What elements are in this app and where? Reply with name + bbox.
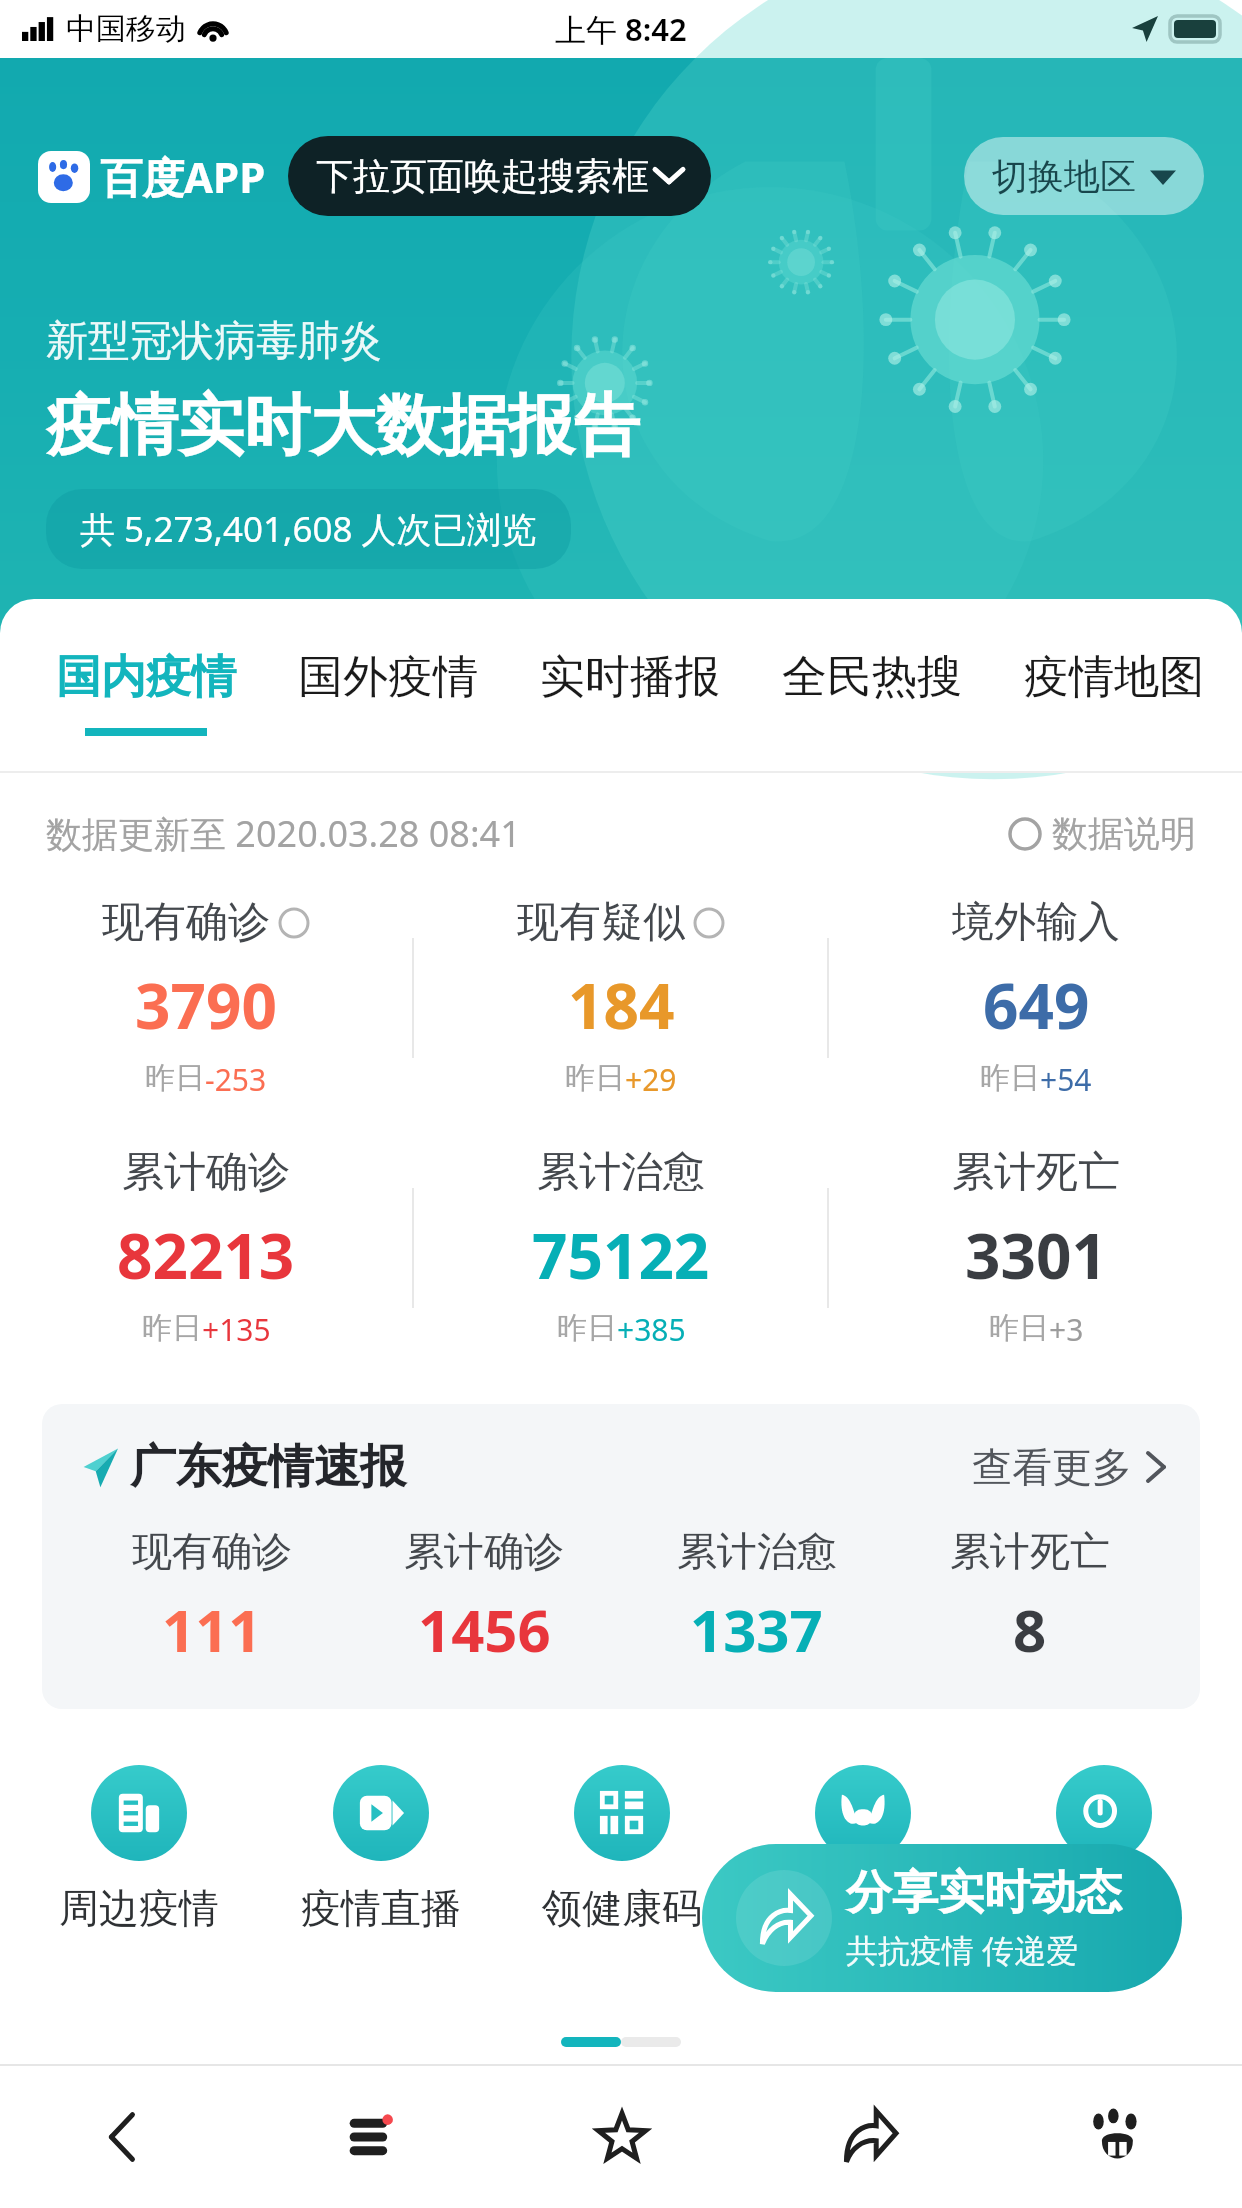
staticText: 疫情直播	[301, 1883, 461, 1933]
button[interactable]: 疫情地图	[1024, 649, 1204, 736]
button[interactable]: 百度APP	[38, 148, 266, 205]
staticText: 国外疫情	[298, 649, 478, 706]
staticText: 现有确诊	[102, 896, 270, 949]
staticText: 3301	[965, 1213, 1107, 1297]
staticText: 累计确诊	[122, 1146, 290, 1199]
staticText: 现有确诊	[132, 1526, 292, 1576]
staticText: 境外输入	[952, 896, 1120, 949]
staticText: 82213	[117, 1213, 295, 1297]
staticText: 中国移动	[66, 10, 186, 48]
staticText: 现有疑似	[517, 896, 685, 949]
button[interactable]: 查看更多	[972, 1442, 1166, 1492]
staticText: 百度APP	[100, 148, 266, 205]
staticText: 实时播报	[540, 649, 720, 706]
staticText: 累计治愈	[537, 1146, 705, 1199]
staticText: 国内疫情	[56, 649, 236, 706]
staticText: +54	[1040, 1059, 1092, 1100]
button[interactable]: Favorite	[498, 2066, 746, 2208]
staticText: 昨日	[145, 1059, 205, 1097]
staticText: 昨日	[980, 1059, 1040, 1097]
staticText: 共 5,273,401,608 人次已浏览	[80, 505, 537, 553]
staticText: 昨日	[142, 1309, 202, 1347]
staticText: 184	[568, 963, 675, 1047]
button[interactable]: 领健康码	[501, 1765, 742, 1933]
staticText: 疫情地图	[1024, 649, 1204, 706]
button[interactable]: 周边疫情	[18, 1765, 260, 1933]
button[interactable]: 国内疫情	[56, 649, 236, 736]
staticText: -253	[205, 1059, 267, 1100]
staticText: +135	[202, 1309, 271, 1350]
staticText: 新型冠状病毒肺炎	[46, 315, 382, 368]
button[interactable]: Menu	[249, 2066, 498, 2208]
staticText: 分享实时动态	[846, 1864, 1122, 1922]
button[interactable]: Baidu	[994, 2066, 1242, 2208]
button[interactable]: 切换地区	[964, 137, 1204, 215]
button[interactable]: 下拉页面唤起搜索框	[288, 136, 711, 216]
button[interactable]: Share	[746, 2066, 994, 2208]
button[interactable]: 共 5,273,401,608 人次已浏览	[46, 489, 571, 569]
staticText: 查看更多	[972, 1442, 1132, 1492]
button[interactable]: 疫情直播	[260, 1765, 501, 1933]
staticText: 切换地区	[992, 154, 1136, 199]
button[interactable]: 数据说明	[1008, 811, 1196, 856]
button[interactable]: 国外疫情	[298, 649, 478, 736]
staticText: 百度鹦鹉	[783, 1883, 943, 1933]
staticText: 累计死亡	[950, 1526, 1110, 1576]
staticText: 领健康码	[542, 1883, 702, 1933]
staticText: 抗疫	[1064, 1883, 1144, 1933]
staticText: 下拉页面唤起搜索框	[316, 153, 649, 200]
staticText: 1337	[690, 1590, 823, 1669]
staticText: 广东疫情速报	[130, 1438, 406, 1496]
button[interactable]: 百度鹦鹉	[742, 1765, 983, 1933]
button[interactable]: 分享实时动态	[702, 1844, 1182, 1992]
staticText: 数据更新至 2020.03.28 08:41	[46, 809, 521, 858]
staticText: 75122	[532, 1213, 710, 1297]
staticText: 111	[162, 1590, 262, 1669]
staticText: 全民热搜	[782, 649, 962, 706]
staticText: 累计死亡	[952, 1146, 1120, 1199]
button[interactable]: Back	[0, 2066, 249, 2208]
staticText: 昨日	[557, 1309, 617, 1347]
button[interactable]: 广东疫情速报	[42, 1404, 1200, 1709]
staticText: 上午 8:42	[555, 8, 687, 50]
button[interactable]: 全民热搜	[782, 649, 962, 736]
staticText: 数据说明	[1052, 811, 1196, 856]
staticText: 累计治愈	[677, 1526, 837, 1576]
staticText: 累计确诊	[404, 1526, 564, 1576]
staticText: 疫情实时大数据报告	[46, 384, 640, 467]
staticText: 3790	[135, 963, 277, 1047]
staticText: 649	[983, 963, 1090, 1047]
staticText: 昨日	[565, 1059, 625, 1097]
staticText: 1456	[418, 1590, 551, 1669]
staticText: 周边疫情	[59, 1883, 219, 1933]
staticText: 共抗疫情 传递爱	[846, 1928, 1079, 1972]
staticText: +385	[617, 1309, 686, 1350]
staticText: 昨日	[989, 1309, 1049, 1347]
staticText: 8	[1013, 1590, 1047, 1669]
staticText: +29	[625, 1059, 677, 1100]
button[interactable]: 抗疫	[983, 1765, 1224, 1933]
button[interactable]: 实时播报	[540, 649, 720, 736]
staticText: +3	[1049, 1309, 1084, 1350]
